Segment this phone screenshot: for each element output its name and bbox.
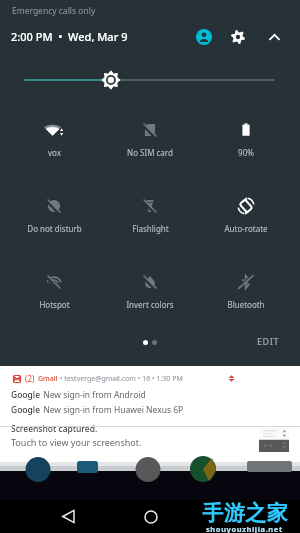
staticText: Hotspot [39,299,70,310]
button[interactable]: vox [6,106,102,176]
button[interactable]: Auto-rotate [198,182,294,252]
button[interactable]: User account [192,25,216,49]
staticText: Do not disturb [27,223,82,234]
staticText: (2) [25,373,35,384]
button[interactable]: Brightness [16,70,284,90]
staticText: shouyouzhijia.net [206,524,283,533]
staticText: Auto-rotate [224,223,268,234]
staticText: Invert colors [126,299,174,310]
staticText: 90% [238,147,254,158]
button[interactable]: Back [28,503,108,530]
staticText: 2:00 PM • Wed, Mar 9 [11,29,128,44]
button[interactable]: (2) [0,366,300,384]
button[interactable]: Do not disturb [6,182,102,252]
staticText: Google [11,404,41,416]
staticText: Google [11,389,41,401]
staticText: 手游之家 [202,500,288,526]
staticText: Emergency calls only [12,5,96,17]
staticText: EDIT [257,335,280,347]
staticText: New sign-in from Huawei Nexus 6P [41,404,184,416]
staticText: Touch to view your screenshot. [11,436,142,448]
button[interactable]: No SIM card [102,106,198,176]
staticText: vox [48,147,61,158]
staticText: New sign-in from Android [41,389,146,401]
button[interactable]: Settings [226,25,250,49]
button[interactable]: Google [0,401,300,417]
button[interactable]: 90% [198,106,294,176]
button[interactable]: Flashlight [102,182,198,252]
staticText: Gmail [38,374,58,384]
staticText: No SIM card [127,147,173,158]
button[interactable]: Invert colors [102,258,198,328]
button[interactable]: EDIT [252,331,285,351]
staticText: Flashlight [132,223,169,234]
button[interactable]: Bluetooth [198,258,294,328]
button[interactable]: Home [110,503,191,530]
button[interactable]: Hotspot [6,258,102,328]
staticText: • testverge@gmail.com • 16 • 1:30 PM [58,374,183,384]
staticText: Bluetooth [227,299,265,310]
button[interactable]: Expand [226,373,237,384]
button[interactable]: Google [0,386,300,402]
staticText: Screenshot captured. [11,423,98,435]
button[interactable]: Screenshot captured. [0,423,300,457]
button[interactable]: Collapse [262,25,286,49]
